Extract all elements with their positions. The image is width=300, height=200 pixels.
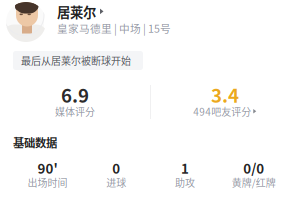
staticText: 皇家马德里 | 中场 | 15号 <box>57 20 171 36</box>
staticText: 6.9 <box>61 81 89 108</box>
staticText: 最后从居莱尔被断球开始 <box>21 53 131 68</box>
button[interactable]: 居莱尔 <box>0 0 300 46</box>
staticText: 90' <box>37 158 57 178</box>
staticText: 0/0 <box>243 158 264 178</box>
staticText: 0 <box>112 158 120 178</box>
button[interactable]: 6.9 <box>0 86 150 120</box>
staticText: 媒体评分 <box>55 104 95 119</box>
staticText: 出场时间 <box>27 175 67 190</box>
staticText: 基础数据 <box>13 134 57 150</box>
staticText: 居莱尔 <box>57 2 96 21</box>
button[interactable]: 3.4 <box>150 86 300 120</box>
staticText: 黄牌/红牌 <box>232 175 276 190</box>
staticText: 进球 <box>106 175 126 190</box>
staticText: 1 <box>181 158 189 178</box>
staticText: 助攻 <box>175 175 195 190</box>
staticText: 494吧友评分 <box>193 104 251 119</box>
staticText: 3.4 <box>211 81 239 108</box>
